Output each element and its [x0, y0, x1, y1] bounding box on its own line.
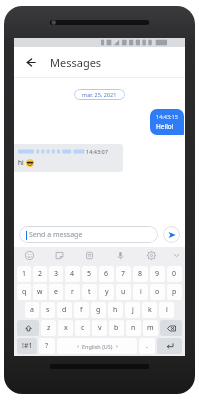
button[interactable]: Clipboard — [74, 247, 105, 264]
button[interactable]: Backspace — [160, 320, 182, 336]
staticText: English (US) — [82, 343, 113, 350]
staticText: mar. 25, 2021 — [82, 91, 117, 98]
staticText: g — [96, 305, 101, 315]
staticText: r — [71, 287, 74, 297]
button[interactable]: 4 — [65, 266, 80, 282]
button[interactable]: c — [75, 320, 90, 336]
staticText: u — [121, 287, 126, 297]
staticText: k — [148, 305, 152, 315]
button[interactable]: Settings — [136, 247, 167, 264]
button[interactable]: y — [99, 284, 114, 300]
button[interactable]: s — [41, 302, 55, 318]
button[interactable]: Send — [163, 226, 180, 243]
staticText: y — [105, 287, 109, 297]
button[interactable]: m — [143, 320, 158, 336]
staticText: l — [166, 305, 168, 315]
button[interactable]: w — [33, 284, 47, 300]
button[interactable]: a — [25, 302, 39, 318]
staticText: 1 — [22, 269, 27, 279]
button[interactable]: Emoji — [14, 247, 44, 264]
button[interactable]: Send a message — [19, 226, 158, 243]
staticText: c — [81, 323, 85, 333]
button[interactable]: q — [17, 284, 31, 300]
staticText: Send a message — [29, 230, 83, 240]
staticText: › — [116, 342, 118, 350]
staticText: q — [22, 287, 27, 297]
button[interactable]: o — [150, 284, 165, 300]
button[interactable]: 14:43:15 — [150, 109, 184, 135]
button[interactable]: r — [65, 284, 80, 300]
staticText: Hello! — [156, 122, 174, 131]
staticText: n — [131, 323, 136, 333]
staticText: j — [132, 305, 134, 315]
button[interactable]: Voice input — [105, 247, 136, 264]
button[interactable]: f — [74, 302, 89, 318]
staticText: e — [54, 287, 58, 297]
staticText: 5 — [87, 269, 92, 279]
button[interactable]: 8 — [133, 266, 148, 282]
button[interactable]: v — [92, 320, 107, 336]
button[interactable]: . — [139, 338, 155, 354]
staticText: z — [47, 323, 51, 333]
staticText: 7 — [121, 269, 126, 279]
button[interactable]: Enter — [157, 338, 182, 354]
button[interactable]: x — [58, 320, 73, 336]
button[interactable]: Expand toolbar — [167, 247, 185, 264]
button[interactable]: 9 — [150, 266, 165, 282]
button[interactable]: 2 — [33, 266, 47, 282]
staticText: o — [155, 287, 160, 297]
button[interactable]: 0 — [167, 266, 182, 282]
button[interactable]: z — [41, 320, 56, 336]
button[interactable]: p — [167, 284, 182, 300]
staticText: 14:43:07 — [86, 148, 108, 155]
button[interactable]: ? — [39, 338, 55, 354]
staticText: v — [98, 323, 102, 333]
button[interactable]: 1 — [17, 266, 31, 282]
staticText: h — [113, 305, 118, 315]
button[interactable]: d — [57, 302, 72, 318]
staticText: hi — [18, 158, 24, 167]
button[interactable]: e — [49, 284, 63, 300]
staticText: i — [140, 287, 142, 297]
button[interactable]: 6 — [99, 266, 114, 282]
staticText: s — [46, 305, 50, 315]
button[interactable]: mar. 25, 2021 — [74, 89, 125, 100]
button[interactable]: l — [159, 302, 174, 318]
staticText: d — [62, 305, 67, 315]
button[interactable]: b — [109, 320, 124, 336]
button[interactable]: 3 — [49, 266, 63, 282]
staticText: p — [172, 287, 177, 297]
button[interactable]: Back — [18, 50, 42, 74]
button[interactable]: u — [116, 284, 131, 300]
button[interactable]: g — [91, 302, 106, 318]
staticText: m — [147, 323, 154, 333]
staticText: 9 — [155, 269, 160, 279]
staticText: !#1 — [22, 341, 33, 351]
staticText: a — [30, 305, 34, 315]
button[interactable]: Stickers — [44, 247, 74, 264]
button[interactable]: t — [82, 284, 97, 300]
staticText: f — [80, 305, 83, 315]
button[interactable]: !#1 — [17, 338, 37, 354]
staticText: 2 — [38, 269, 43, 279]
staticText: ? — [45, 341, 49, 351]
button[interactable]: Space — [57, 338, 137, 354]
staticText: b — [114, 323, 119, 333]
staticText: x — [64, 323, 68, 333]
button[interactable]: k — [142, 302, 157, 318]
staticText: w — [37, 287, 43, 297]
button[interactable]: 7 — [116, 266, 131, 282]
button[interactable]: 5 — [82, 266, 97, 282]
button[interactable]: h — [108, 302, 123, 318]
staticText: . — [146, 341, 148, 351]
staticText: ‹ — [77, 342, 79, 350]
staticText: 8 — [138, 269, 143, 279]
staticText: 0 — [172, 269, 177, 279]
button[interactable]: i — [133, 284, 148, 300]
button[interactable]: j — [125, 302, 140, 318]
staticText: 14:43:15 — [156, 113, 178, 120]
staticText: Messages — [50, 55, 102, 70]
button[interactable]: n — [126, 320, 141, 336]
button[interactable]: 14:43:07 — [14, 144, 123, 172]
button[interactable]: Shift — [17, 320, 39, 336]
